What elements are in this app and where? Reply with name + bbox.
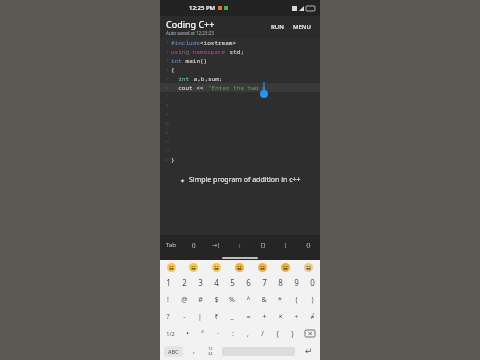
button[interactable]: [] [251,235,274,255]
button[interactable]: Emoji [274,260,297,274]
staticText: ( [295,295,298,305]
button[interactable]: 1 [160,274,176,291]
button[interactable]: 3 [192,274,208,291]
button[interactable]: {} [297,235,320,255]
button[interactable]: ! [160,291,176,308]
staticText: 2 [166,49,169,54]
button[interactable]: _ [224,308,240,325]
button[interactable]: : [225,325,240,342]
button[interactable]: ₹ [208,308,224,325]
staticText: 14 [164,157,169,162]
button[interactable]: ≠ [304,308,320,325]
staticText: 7 [166,94,169,99]
button[interactable]: ; [228,235,251,255]
button[interactable]: $ [208,291,224,308]
button[interactable]: RUN [268,20,287,34]
button[interactable]: , [240,325,255,342]
button[interactable]: 9 [288,274,304,291]
staticText: Tab [166,241,176,249]
button[interactable]: 6 [240,274,256,291]
staticText: ≠ [310,312,315,322]
button[interactable]: MENU [290,20,314,34]
staticText: 0 [310,277,315,288]
staticText: 4 [214,277,219,288]
button[interactable]: @ [176,291,192,308]
button[interactable]: 4 [208,274,224,291]
staticText: $ [214,295,219,305]
staticText: #include [171,39,200,47]
button[interactable]: 0 [304,274,320,291]
button[interactable]: () [182,235,205,255]
button[interactable]: ? [160,308,176,325]
staticText: 8 [166,103,169,108]
button[interactable]: Emoji [251,260,274,274]
staticText: 5 [230,277,235,288]
staticText: 12:25 PM [189,4,216,12]
button[interactable]: ) [304,291,320,308]
button[interactable]: 12 [202,342,219,360]
button[interactable]: - [176,308,192,325]
button[interactable]: Emoji [205,260,228,274]
button[interactable]: Tab [160,235,182,255]
button[interactable]: ÷ [288,308,304,325]
button[interactable]: 7 [256,274,272,291]
staticText: 12 [208,346,213,351]
staticText: } [291,329,294,339]
staticText: 11 [164,130,169,135]
staticText: @ [181,295,188,305]
staticText: { [276,329,279,339]
staticText: 2 [182,277,187,288]
button[interactable]: Emoji [160,260,182,274]
button[interactable]: } [285,325,300,342]
button[interactable]: ^ [240,291,256,308]
button[interactable]: Space [219,342,298,360]
staticText: ! [167,295,169,305]
staticText: <iostream> [200,39,237,47]
button[interactable]: % [224,291,240,308]
staticText: • [186,329,189,339]
button[interactable]: # [192,291,208,308]
staticText: {} [306,241,311,249]
button[interactable]: · [210,325,225,342]
button[interactable]: , [186,342,202,360]
button[interactable]: | [274,235,297,255]
button[interactable]: × [272,308,288,325]
button[interactable]: • [180,325,195,342]
button[interactable]: ( [288,291,304,308]
staticText: 1 [166,40,169,45]
staticText: 1/2 [166,330,175,337]
staticText: cout << [171,84,208,92]
staticText: 13 [164,148,169,153]
button[interactable]: 8 [272,274,288,291]
staticText: std; [226,48,245,56]
staticText: * [278,295,282,305]
button[interactable]: →| [205,235,228,255]
staticText: ABC [168,348,179,355]
button[interactable]: Backspace [300,325,320,342]
button[interactable]: 2 [176,274,192,291]
button[interactable]: ABC [160,342,186,360]
button[interactable]: = [240,308,256,325]
button[interactable]: & [256,291,272,308]
button[interactable]: Emoji [182,260,205,274]
staticText: - [183,312,186,322]
staticText: , [193,346,195,356]
staticText: →| [212,241,221,249]
staticText: 5 [166,76,169,81]
button[interactable]: * [272,291,288,308]
button[interactable]: { [270,325,285,342]
button[interactable]: Emoji [228,260,251,274]
staticText: 6 [166,85,169,90]
staticText: { [171,66,175,74]
button[interactable]: 5 [224,274,240,291]
staticText: () [192,241,196,249]
button[interactable]: + [256,308,272,325]
button[interactable]: 1/2 [160,325,180,342]
staticText: Auto saved at 12:23:23 [166,30,214,36]
button[interactable]: ° [195,325,210,342]
staticText: | [198,312,202,322]
button[interactable]: | [192,308,208,325]
button[interactable]: Enter [298,342,320,360]
button[interactable]: / [255,325,270,342]
button[interactable]: Emoji [297,260,320,274]
